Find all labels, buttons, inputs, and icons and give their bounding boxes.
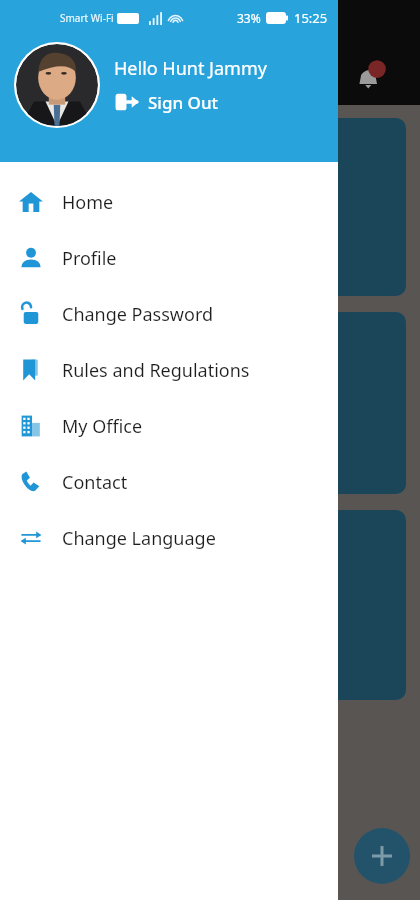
staticText: Change Language: [62, 526, 216, 551]
staticText: Smart Wi-Fi: [60, 11, 114, 25]
staticText: Change Password: [62, 302, 214, 327]
staticText: Profile: [62, 246, 117, 271]
staticText: Contact: [62, 470, 128, 495]
button[interactable]: Sign Out: [114, 89, 219, 115]
button[interactable]: Change Password: [0, 286, 338, 342]
button[interactable]: [14, 510, 406, 700]
staticText: Sign Out: [148, 91, 219, 114]
button[interactable]: Change Language: [0, 510, 338, 566]
button[interactable]: Request: [14, 118, 406, 296]
staticText: My Office: [62, 414, 143, 439]
button[interactable]: Home: [0, 174, 338, 230]
staticText: Home: [62, 190, 114, 215]
button[interactable]: [14, 312, 406, 494]
button[interactable]: Contact: [0, 454, 338, 510]
staticText: 15:25: [294, 9, 328, 27]
staticText: Request: [32, 196, 97, 219]
button[interactable]: Rules and Regulations: [0, 342, 338, 398]
staticText: Hello Hunt Jammy: [114, 56, 267, 81]
button[interactable]: Add: [354, 828, 410, 884]
button[interactable]: Profile photo: [16, 44, 98, 126]
staticText: Rules and Regulations: [62, 358, 250, 383]
button[interactable]: Notifications: [346, 53, 394, 101]
staticText: 33%: [237, 10, 261, 26]
button[interactable]: Profile: [0, 230, 338, 286]
button[interactable]: My Office: [0, 398, 338, 454]
